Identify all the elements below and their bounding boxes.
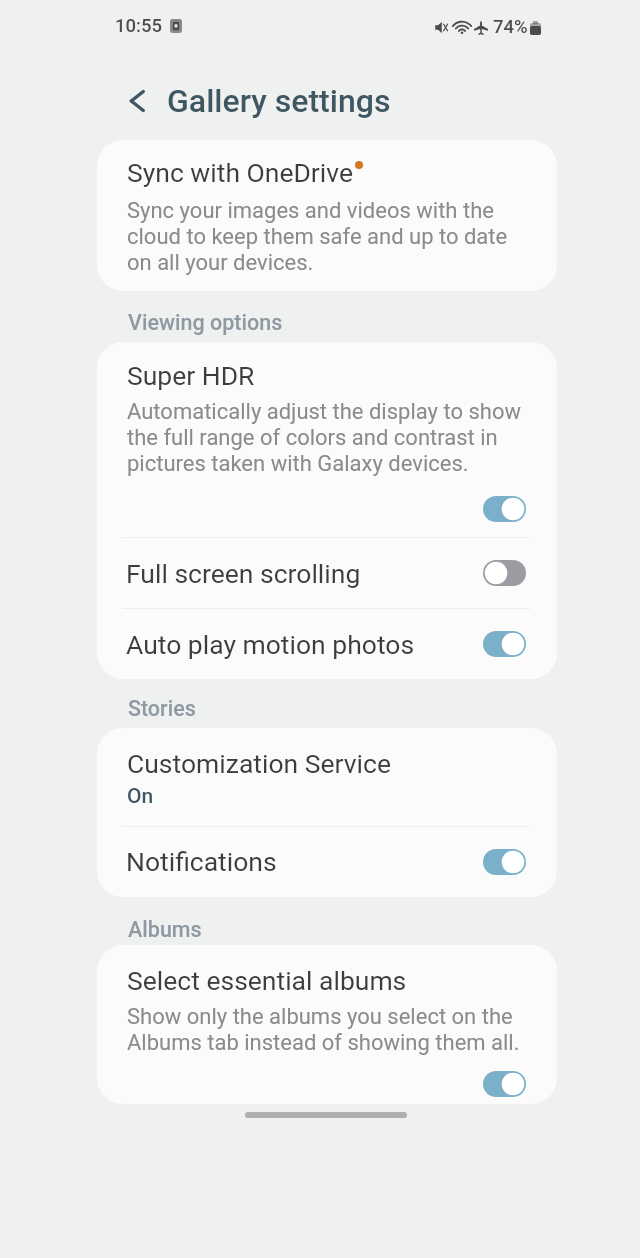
staticText: 74% [493,16,528,38]
button[interactable]: Select essential albums [97,945,557,1104]
staticText: Full screen scrolling [126,558,361,589]
button[interactable]: Customization Service [97,728,557,826]
staticText: Customization Service [127,748,391,779]
staticText: Gallery settings [167,82,391,120]
staticText: On [127,784,154,809]
staticText: Viewing options [128,310,283,335]
staticText: Show only the albums you select on the A… [127,1004,527,1056]
button[interactable]: Sync with OneDrive [97,140,557,276]
staticText: Albums [128,917,202,942]
staticText: Select essential albums [127,965,407,996]
button[interactable]: Auto play motion photos [97,609,557,679]
staticText: 10:55 [115,15,162,37]
button[interactable]: Switch on [472,838,536,886]
button[interactable]: Switch on [472,1064,536,1104]
staticText: Auto play motion photos [126,629,415,660]
button[interactable]: Switch off [472,549,536,597]
staticText: Sync your images and videos with the clo… [127,198,527,276]
staticText: Super HDR [127,360,255,391]
staticText: Stories [128,696,196,721]
button[interactable]: Full screen scrolling [97,538,557,608]
staticText: Notifications [126,846,277,877]
staticText: Automatically adjust the display to show… [127,399,527,477]
staticText: Sync with OneDrive [127,157,354,188]
button[interactable]: Switch on [472,485,536,533]
button[interactable]: Switch on [472,620,536,668]
button[interactable]: Navigate up [118,83,154,119]
button[interactable]: Super HDR [97,342,557,537]
button[interactable]: Notifications [97,827,557,896]
